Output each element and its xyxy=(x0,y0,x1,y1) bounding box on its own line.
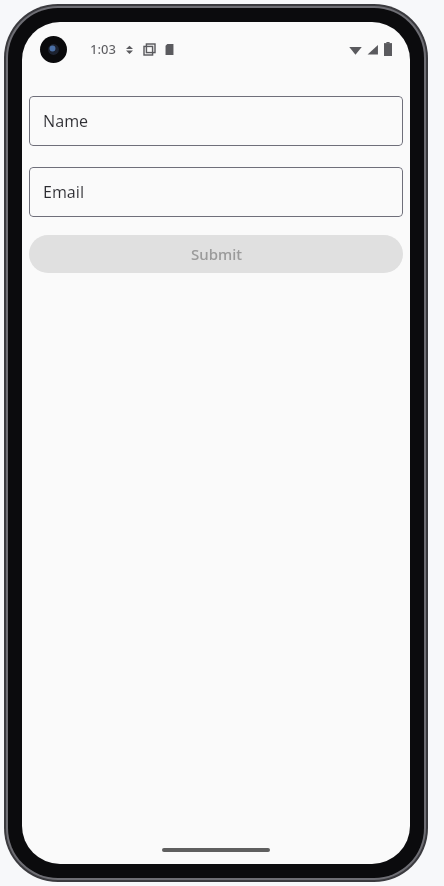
staticText: Name xyxy=(43,110,89,132)
button[interactable]: Submit xyxy=(29,235,403,273)
button[interactable]: Email xyxy=(29,167,403,217)
staticText: Email xyxy=(43,181,85,203)
staticText: Submit xyxy=(191,244,242,264)
staticText: 1:03 xyxy=(90,40,116,58)
button[interactable]: Name xyxy=(29,96,403,146)
other: Home gesture xyxy=(162,848,270,852)
